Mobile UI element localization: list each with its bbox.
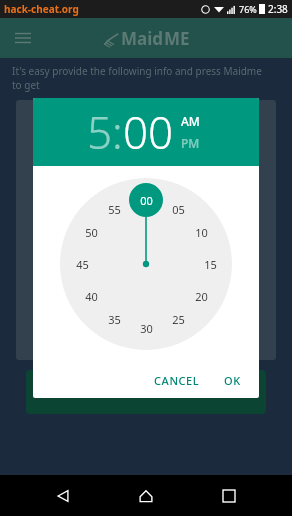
staticText: Maid — [121, 27, 164, 50]
button[interactable]: CANCEL — [146, 369, 208, 392]
staticText: 15 — [204, 257, 217, 272]
button[interactable]: Back — [43, 476, 83, 516]
staticText: OK — [224, 373, 241, 388]
button[interactable]: 00 — [123, 102, 174, 162]
staticText: 30 — [140, 321, 153, 336]
staticText: 5: — [87, 102, 123, 162]
staticText: MAIDME — [116, 383, 176, 401]
staticText: 2:38 — [268, 2, 288, 16]
staticText: ME — [164, 27, 190, 50]
button[interactable]: AM — [181, 113, 200, 129]
staticText: PM — [181, 135, 200, 151]
staticText: 05 — [172, 202, 185, 217]
button[interactable]: PM — [181, 135, 200, 151]
staticText: 76% — [239, 3, 257, 15]
staticText: hack-cheat.org — [4, 2, 79, 16]
button[interactable]: Home — [126, 476, 166, 516]
staticText: 40 — [85, 289, 98, 304]
staticText: 55 — [108, 202, 121, 217]
staticText: 45 — [76, 257, 89, 272]
staticText: It's easy provide the following info and… — [12, 64, 262, 92]
button[interactable]: MAIDME — [26, 370, 266, 414]
staticText: 50 — [85, 225, 98, 240]
button[interactable]: Menu — [10, 25, 36, 51]
staticText: 35 — [108, 312, 121, 327]
staticText: 10 — [195, 225, 208, 240]
staticText: 00 — [123, 102, 174, 162]
button[interactable]: Recents — [209, 476, 249, 516]
staticText: CANCEL — [154, 373, 200, 388]
staticText: 25 — [172, 312, 185, 327]
staticText: AM — [181, 113, 200, 129]
staticText: 00 — [140, 193, 153, 208]
staticText: 20 — [195, 289, 208, 304]
button[interactable]: OK — [216, 369, 249, 392]
button[interactable]: 5: — [87, 102, 123, 162]
